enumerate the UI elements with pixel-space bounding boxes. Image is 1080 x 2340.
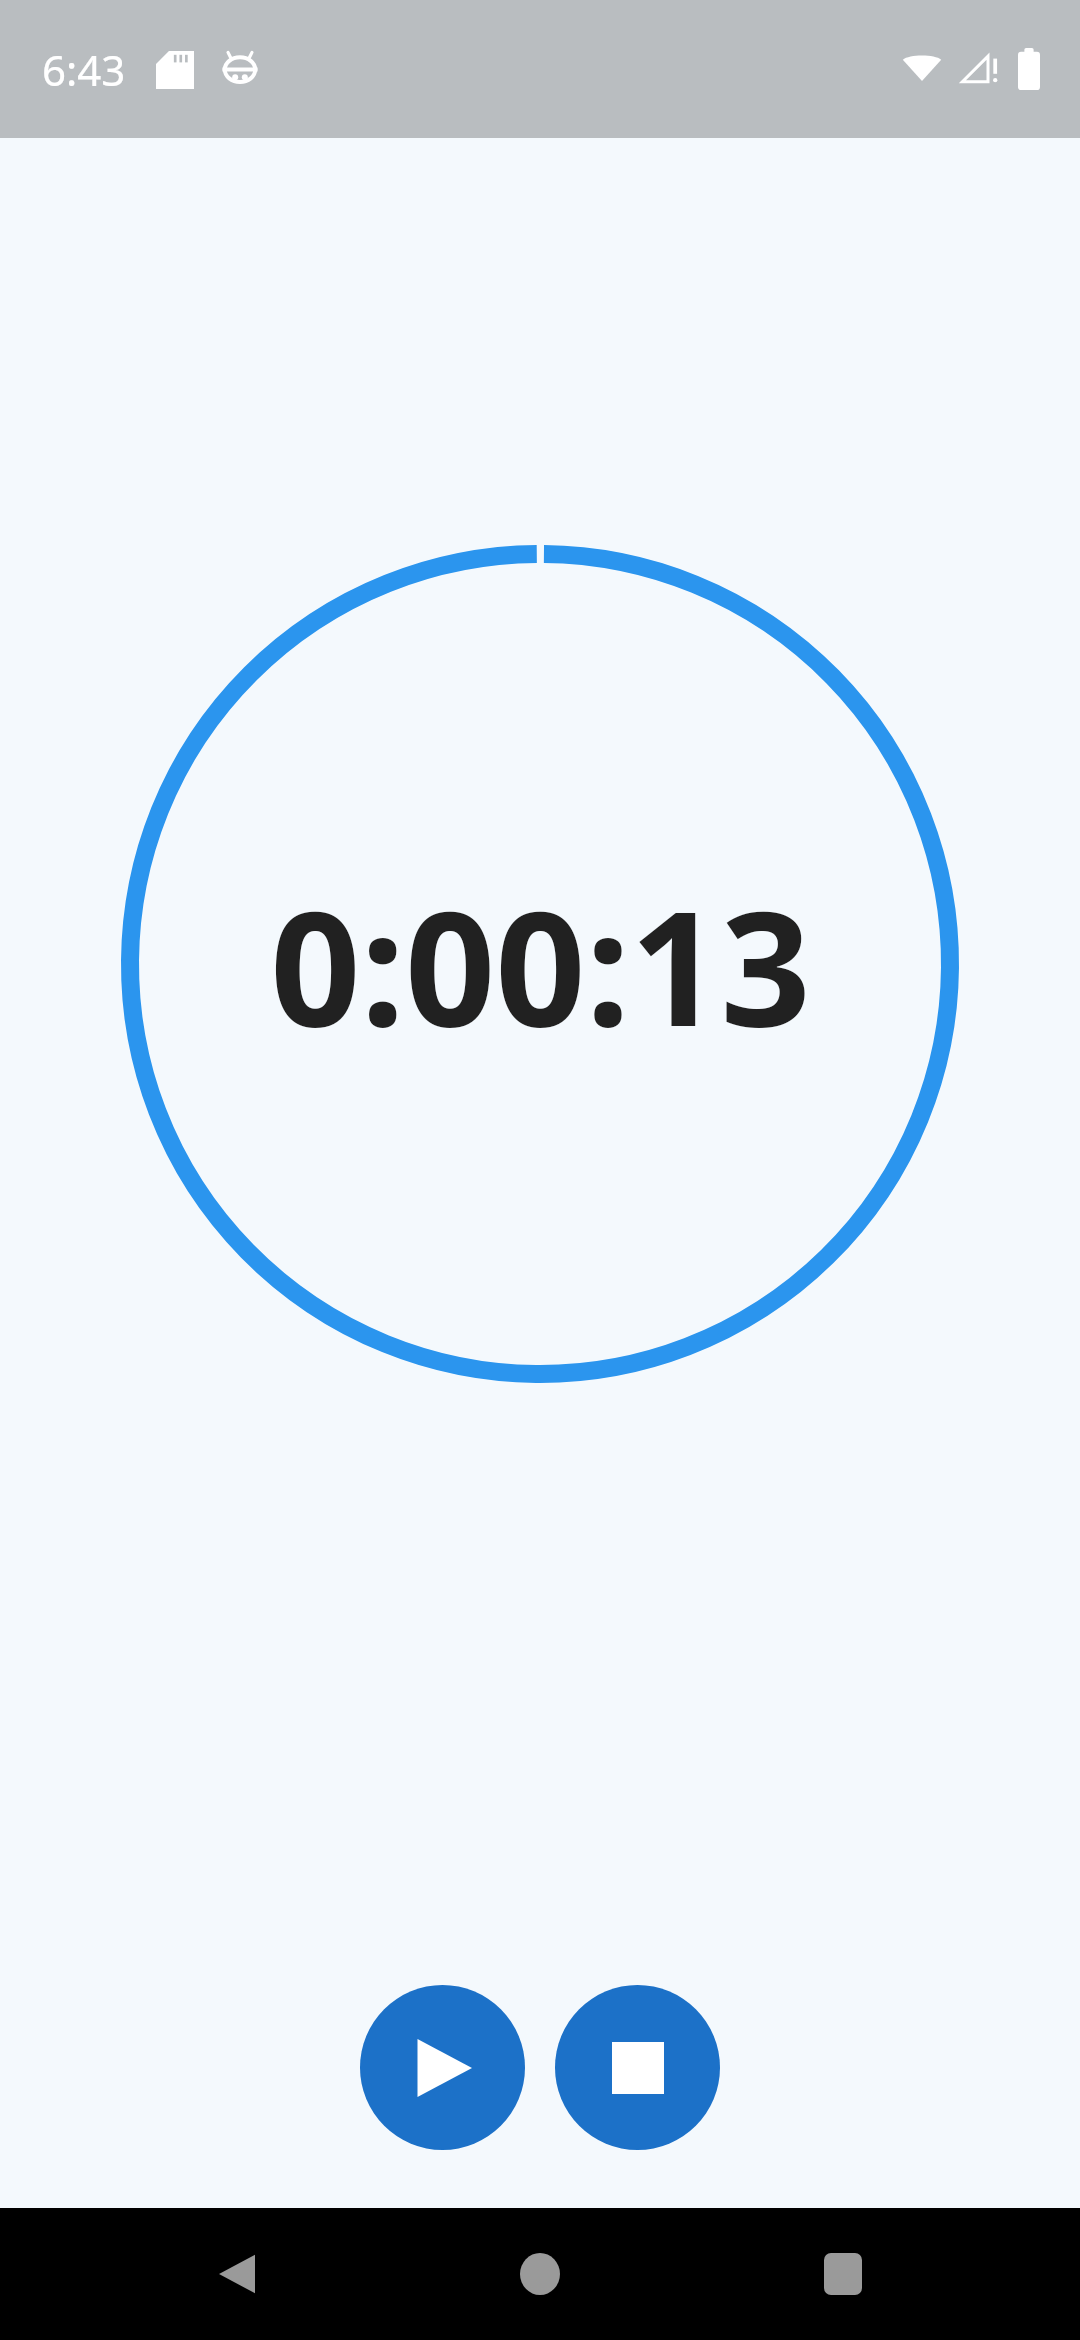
button[interactable]: Recent apps <box>777 2208 909 2340</box>
button[interactable]: Home <box>474 2208 606 2340</box>
button[interactable]: Stop timer <box>555 1985 720 2150</box>
button[interactable]: Start timer <box>360 1985 525 2150</box>
button[interactable]: Back <box>171 2208 303 2340</box>
staticText: 6:43 <box>42 41 126 98</box>
staticText: 0:00:13 <box>270 857 811 1072</box>
